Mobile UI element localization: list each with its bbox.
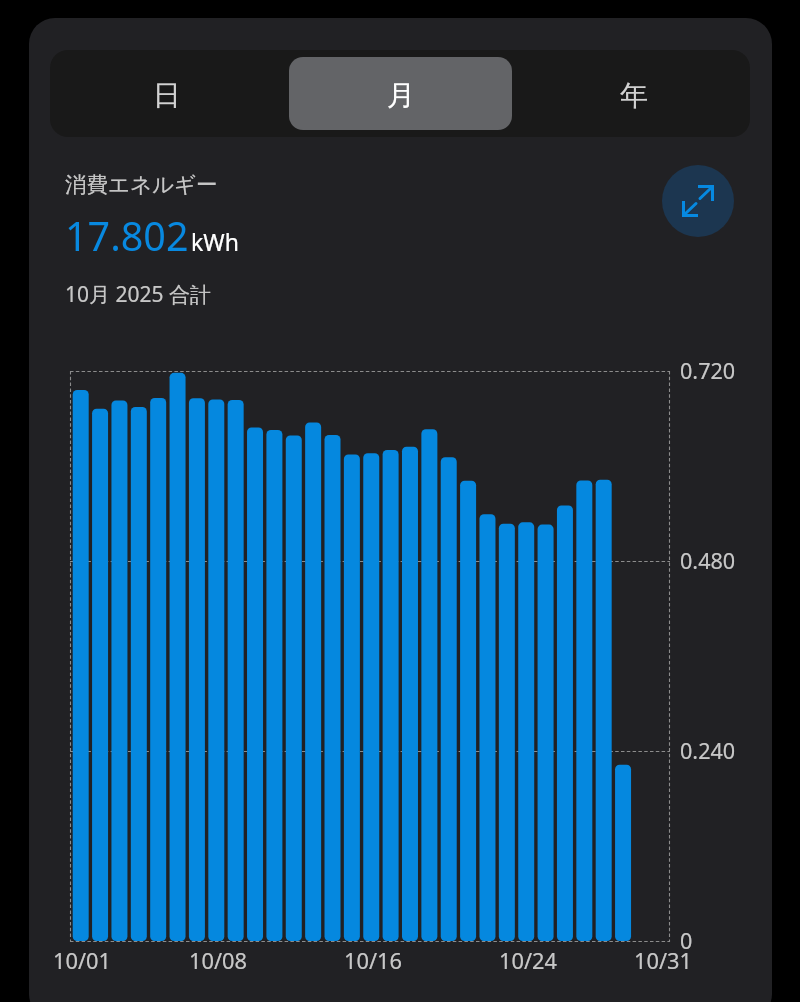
staticText: 10/31 (618, 946, 708, 976)
button[interactable]: Expand chart (662, 165, 734, 237)
staticText: 0.480 (680, 546, 736, 575)
staticText: 0 (680, 926, 693, 955)
staticText: 17.802 (65, 209, 189, 263)
staticText: 消費エネルギー (65, 171, 218, 198)
staticText: 10月 2025 合計 (65, 280, 211, 309)
staticText: 0.240 (680, 736, 736, 765)
staticText: 年 (620, 78, 648, 113)
button[interactable]: 年 (522, 57, 745, 130)
button[interactable]: Energy consumption bar chart (70, 371, 670, 942)
button[interactable]: 月 (289, 57, 512, 130)
staticText: 10/16 (328, 946, 418, 976)
staticText: 0.720 (680, 356, 736, 385)
staticText: 10/01 (37, 946, 127, 976)
button[interactable]: 日 (55, 57, 279, 130)
staticText: 10/24 (483, 946, 573, 976)
staticText: 月 (387, 78, 415, 113)
staticText: 日 (153, 78, 181, 113)
staticText: 10/08 (173, 946, 263, 976)
staticText: kWh (191, 226, 239, 257)
